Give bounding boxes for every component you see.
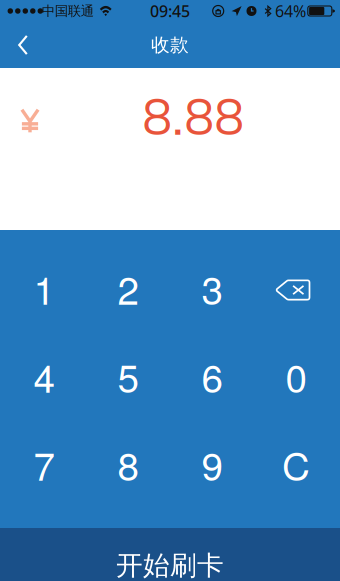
- staticText: 0: [285, 348, 306, 404]
- staticText: 中国联通: [42, 3, 94, 19]
- button[interactable]: 开始刷卡: [0, 528, 340, 581]
- button[interactable]: 3: [170, 246, 254, 334]
- staticText: 6: [201, 348, 222, 404]
- staticText: 64%: [275, 0, 306, 22]
- staticText: 收款: [151, 33, 189, 56]
- button[interactable]: 1: [2, 246, 86, 334]
- button[interactable]: Delete: [254, 246, 338, 334]
- button[interactable]: 4: [2, 334, 86, 422]
- button[interactable]: 9: [170, 422, 254, 510]
- staticText: 8.88: [142, 83, 244, 152]
- staticText: 1: [33, 260, 54, 316]
- staticText: 8: [117, 436, 138, 492]
- staticText: 2: [117, 260, 138, 316]
- staticText: C: [282, 436, 310, 492]
- staticText: 09:45: [150, 0, 190, 22]
- button[interactable]: C: [254, 422, 338, 510]
- staticText: 3: [201, 260, 222, 316]
- staticText: 9: [201, 436, 222, 492]
- staticText: 7: [33, 436, 54, 492]
- button[interactable]: 5: [86, 334, 170, 422]
- staticText: 5: [117, 348, 138, 404]
- button[interactable]: 0: [254, 334, 338, 422]
- staticText: 开始刷卡: [116, 549, 224, 581]
- button[interactable]: 7: [2, 422, 86, 510]
- button[interactable]: 2: [86, 246, 170, 334]
- button[interactable]: 6: [170, 334, 254, 422]
- button[interactable]: Back: [0, 22, 46, 68]
- staticText: 4: [33, 348, 54, 404]
- button[interactable]: 8: [86, 422, 170, 510]
